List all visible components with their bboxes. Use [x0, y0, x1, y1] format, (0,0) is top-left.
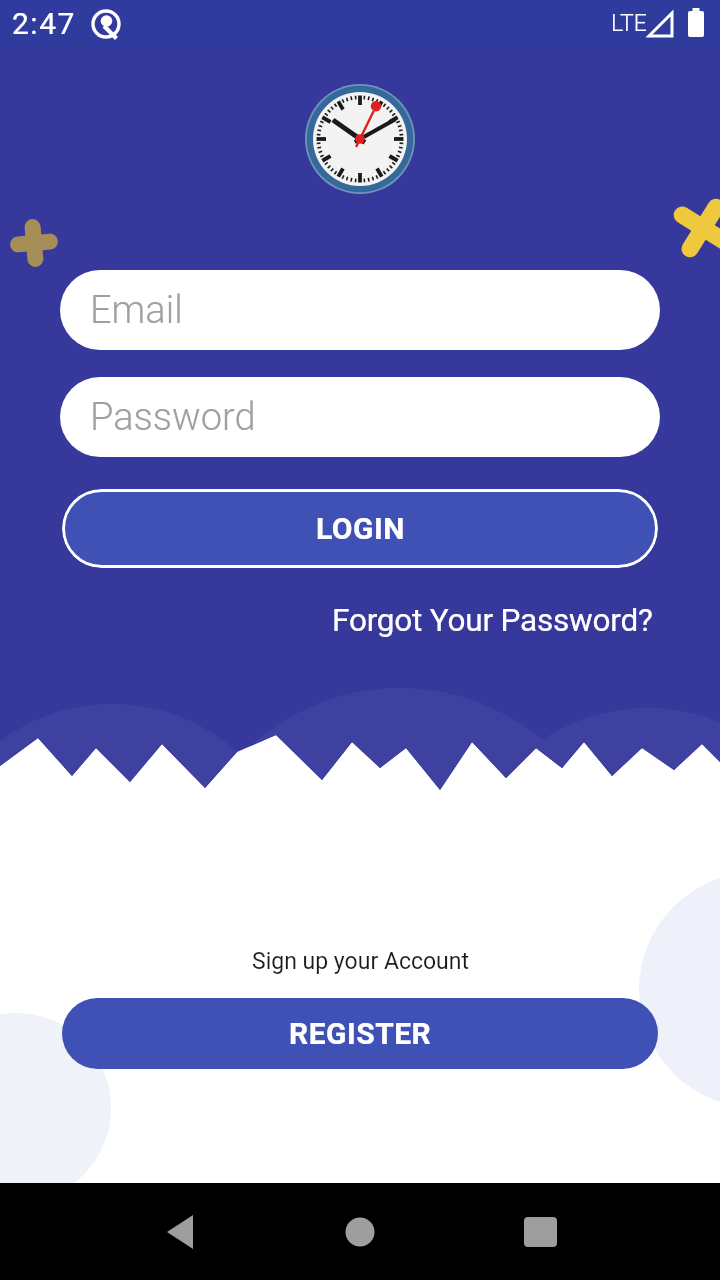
button[interactable]: REGISTER — [62, 998, 658, 1069]
button[interactable]: Forgot Your Password? — [332, 602, 653, 639]
button[interactable] — [490, 1183, 590, 1280]
staticText: LTE — [611, 10, 647, 37]
button[interactable] — [310, 1183, 410, 1280]
staticText: 2:47 — [12, 6, 76, 41]
button[interactable] — [130, 1183, 230, 1280]
staticText: REGISTER — [289, 1016, 432, 1051]
staticText: LOGIN — [316, 511, 405, 546]
staticText: Password — [90, 395, 256, 440]
button[interactable]: Password — [60, 377, 660, 457]
staticText: Forgot Your Password? — [332, 602, 653, 639]
staticText: Email — [90, 288, 183, 333]
button[interactable]: Email — [60, 270, 660, 350]
button[interactable]: LOGIN — [62, 489, 658, 568]
staticText: Sign up your Account — [252, 948, 469, 975]
